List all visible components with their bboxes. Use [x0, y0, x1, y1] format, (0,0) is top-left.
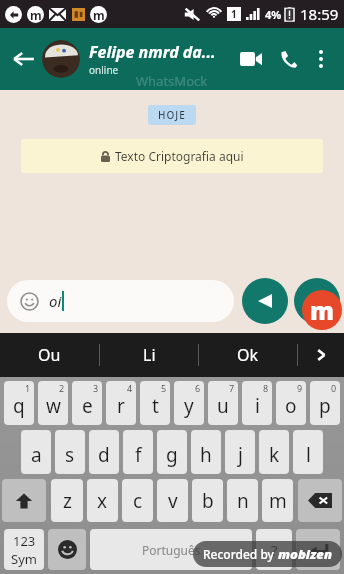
button[interactable]: Ou: [0, 333, 99, 377]
staticText: t: [152, 393, 159, 419]
staticText: k: [269, 442, 280, 468]
button[interactable]: Record voice message: [242, 278, 288, 324]
button[interactable]: Ok: [199, 333, 297, 377]
button[interactable]: i: [242, 381, 272, 425]
staticText: mobizen: [278, 545, 332, 563]
staticText: 1: [231, 7, 237, 21]
button[interactable]: Emoji: [48, 529, 86, 570]
button[interactable]: n: [227, 479, 258, 522]
staticText: 3: [93, 382, 99, 394]
button[interactable]: Voice call: [272, 42, 306, 76]
button[interactable]: l: [293, 430, 323, 474]
staticText: s: [65, 442, 75, 468]
staticText: g: [166, 442, 178, 468]
staticText: c: [133, 488, 143, 514]
staticText: Texto Criptografia aqui: [115, 148, 244, 164]
button[interactable]: v: [157, 479, 188, 522]
staticText: Recorded by: [203, 546, 278, 562]
staticText: m: [93, 7, 105, 23]
button[interactable]: Back: [6, 41, 42, 77]
button[interactable]: Enter: [296, 529, 340, 570]
staticText: d: [98, 442, 110, 468]
staticText: 2: [59, 382, 65, 394]
staticText: o: [285, 393, 297, 419]
staticText: WhatsMock: [136, 72, 208, 90]
button[interactable]: Contact photo: [42, 40, 80, 78]
staticText: Ok: [237, 344, 259, 366]
staticText: Felipe nmrd da...: [89, 41, 216, 63]
staticText: p: [319, 393, 331, 419]
staticText: m: [310, 294, 334, 327]
button[interactable]: h: [191, 430, 221, 474]
button[interactable]: g: [157, 430, 187, 474]
button[interactable]: s: [55, 430, 85, 474]
button[interactable]: m: [262, 479, 293, 522]
staticText: j: [238, 442, 243, 468]
staticText: Ou: [38, 344, 61, 366]
button[interactable]: u: [208, 381, 238, 425]
staticText: m: [269, 488, 287, 514]
staticText: m: [30, 7, 42, 23]
staticText: r: [117, 393, 125, 419]
button[interactable]: t: [140, 381, 170, 425]
staticText: y: [184, 393, 194, 419]
button[interactable]: b: [192, 479, 223, 522]
button[interactable]: w: [38, 381, 68, 425]
staticText: v: [168, 488, 178, 514]
staticText: Li: [143, 344, 156, 366]
button[interactable]: q: [4, 381, 34, 425]
button[interactable]: Li: [100, 333, 198, 377]
button[interactable]: More options: [306, 44, 336, 74]
button[interactable]: p: [310, 381, 340, 425]
staticText: f: [135, 442, 142, 468]
button[interactable]: Shift: [2, 479, 46, 522]
staticText: 0: [331, 382, 337, 394]
button[interactable]: x: [87, 479, 118, 522]
staticText: 9: [297, 382, 303, 394]
staticText: z: [63, 488, 72, 514]
button[interactable]: z: [51, 479, 83, 522]
button[interactable]: Português: [90, 529, 252, 570]
staticText: e: [82, 393, 93, 419]
staticText: l: [306, 442, 311, 468]
button[interactable]: Video call: [234, 42, 268, 76]
staticText: ?: [271, 540, 278, 560]
button[interactable]: f: [123, 430, 153, 474]
staticText: 8: [263, 382, 269, 394]
button[interactable]: c: [122, 479, 153, 522]
staticText: 7: [229, 382, 235, 394]
staticText: 123: [13, 532, 36, 550]
staticText: q: [13, 393, 25, 419]
staticText: online: [89, 63, 119, 77]
button[interactable]: y: [174, 381, 204, 425]
button[interactable]: Backspace: [298, 479, 342, 522]
staticText: 18:59: [300, 4, 339, 24]
staticText: b: [202, 488, 214, 514]
button[interactable]: r: [106, 381, 136, 425]
button[interactable]: o: [276, 381, 306, 425]
button[interactable]: k: [259, 430, 289, 474]
button[interactable]: More suggestions: [298, 333, 344, 377]
button[interactable]: a: [21, 430, 51, 474]
staticText: oi: [49, 291, 62, 311]
staticText: x: [97, 488, 108, 514]
button[interactable]: Mobizen: [302, 290, 342, 330]
button[interactable]: d: [89, 430, 119, 474]
staticText: a: [31, 442, 42, 468]
button[interactable]: j: [225, 430, 255, 474]
staticText: 6: [195, 382, 201, 394]
staticText: 4%: [265, 7, 282, 22]
button[interactable]: Send: [294, 278, 340, 324]
staticText: h: [200, 442, 212, 468]
button[interactable]: ?: [256, 529, 292, 570]
button[interactable]: e: [72, 381, 102, 425]
staticText: 4: [127, 382, 133, 394]
button[interactable]: Felipe nmrd da...: [89, 41, 234, 77]
staticText: HOJE: [158, 108, 186, 122]
staticText: w: [46, 393, 61, 419]
button[interactable]: 123: [4, 529, 44, 570]
staticText: n: [237, 488, 249, 514]
staticText: 5: [161, 382, 167, 394]
staticText: u: [217, 393, 229, 419]
button[interactable]: oi: [7, 280, 234, 322]
